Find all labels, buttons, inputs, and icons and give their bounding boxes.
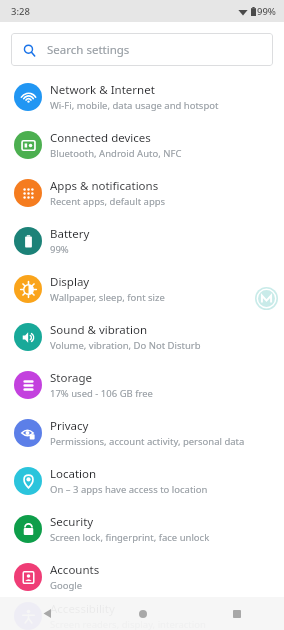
staticText: Apps & notifications <box>50 178 159 194</box>
button[interactable]: Moto assistant <box>255 287 278 310</box>
staticText: Accessibility <box>50 601 115 617</box>
staticText: Display <box>50 274 90 290</box>
staticText: Volume, vibration, Do Not Disturb <box>50 339 201 352</box>
staticText: 99% <box>257 5 276 18</box>
button[interactable]: Display <box>0 265 284 313</box>
button[interactable]: Back <box>31 597 64 630</box>
staticText: Storage <box>50 370 92 386</box>
staticText: Connected devices <box>50 130 151 146</box>
staticText: Screen lock, fingerprint, face unlock <box>50 531 210 544</box>
staticText: 3:28 <box>11 5 30 18</box>
staticText: Sound & vibration <box>50 322 147 338</box>
button[interactable]: Network & Internet <box>0 73 284 121</box>
button[interactable]: Connected devices <box>0 121 284 169</box>
button[interactable]: Storage <box>0 361 284 409</box>
staticText: Recent apps, default apps <box>50 195 166 208</box>
staticText: Wallpaper, sleep, font size <box>50 291 165 304</box>
staticText: Wi-Fi, mobile, data usage and hotspot <box>50 99 219 112</box>
staticText: Bluetooth, Android Auto, NFC <box>50 147 182 160</box>
staticText: Privacy <box>50 418 89 434</box>
staticText: 99% <box>50 243 69 256</box>
staticText: Search settings <box>47 42 130 58</box>
staticText: Google <box>50 579 83 592</box>
button[interactable]: Sound & vibration <box>0 313 284 361</box>
button[interactable]: Apps & notifications <box>0 169 284 217</box>
button[interactable]: Accessibility <box>0 601 284 630</box>
button[interactable]: Privacy <box>0 409 284 457</box>
staticText: Battery <box>50 226 90 242</box>
staticText: Accounts <box>50 562 100 578</box>
staticText: On – 3 apps have access to location <box>50 483 208 496</box>
button[interactable]: Search settings <box>11 33 273 66</box>
button[interactable]: Accounts <box>0 553 284 601</box>
staticText: Security <box>50 514 94 530</box>
button[interactable]: Location <box>0 457 284 505</box>
button[interactable]: Battery <box>0 217 284 265</box>
staticText: 17% used - 106 GB free <box>50 387 153 400</box>
button[interactable]: Home <box>126 597 159 630</box>
staticText: Permissions, account activity, personal … <box>50 435 245 448</box>
staticText: Network & Internet <box>50 82 155 98</box>
button[interactable]: Security <box>0 505 284 553</box>
staticText: Location <box>50 466 97 482</box>
button[interactable]: Recent apps <box>220 597 253 630</box>
